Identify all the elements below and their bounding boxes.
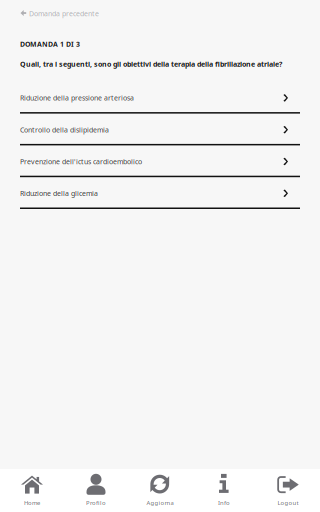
button[interactable]: Prevenzione dell'ictus cardioembolico [0,155,320,187]
staticText: Riduzione della pressione arteriosa [20,93,134,103]
staticText: Logout [277,499,298,507]
button[interactable]: Domanda precedente [0,0,320,27]
button[interactable]: Riduzione della pressione arteriosa [0,92,320,124]
staticText: Profilo [86,499,106,507]
staticText: Home [24,499,40,507]
button[interactable]: Aggiorna [128,469,192,512]
button[interactable]: Logout [256,469,320,512]
staticText: Riduzione della glicemia [20,189,98,198]
staticText: Quali, tra i seguenti, sono gli obiettiv… [20,59,282,69]
staticText: Aggiorna [146,499,173,507]
staticText: Info [218,499,230,507]
button[interactable]: Profilo [64,469,128,512]
staticText: Controllo della dislipidemia [20,125,109,134]
staticText: DOMANDA 1 DI 3 [20,39,80,49]
staticText: Prevenzione dell'ictus cardioembolico [20,157,142,166]
button[interactable]: Riduzione della glicemia [0,187,320,219]
button[interactable]: Controllo della dislipidemia [0,124,320,155]
button[interactable]: Info [192,469,256,512]
staticText: Domanda precedente [29,9,99,18]
button[interactable]: Home [0,469,64,512]
